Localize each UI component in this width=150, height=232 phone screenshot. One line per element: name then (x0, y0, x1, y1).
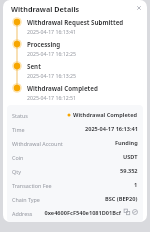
staticText: 2025-04-17 16:13:41 (27, 28, 77, 35)
staticText: BSC (BEP20) (105, 195, 138, 203)
staticText: Withdrawal Account (12, 140, 63, 147)
staticText: 59.352 (120, 167, 138, 175)
staticText: Transaction Fee (12, 182, 52, 189)
staticText: 2025-04-17 16:13:41 (85, 125, 138, 133)
staticText: 2025-04-17 16:12:25 (27, 50, 77, 57)
staticText: Time (12, 126, 25, 133)
staticText: 2025-04-17 16:13:25 (27, 72, 77, 79)
staticText: Status (12, 112, 28, 119)
staticText: Chain Type (12, 196, 40, 203)
button[interactable]: Close (135, 4, 143, 12)
staticText: Qty (12, 168, 21, 175)
staticText: USDT (123, 153, 138, 161)
button[interactable]: Open in explorer (132, 209, 138, 215)
staticText: Withdrawal Completed (73, 111, 138, 119)
staticText: Address (12, 210, 33, 216)
staticText: Funding (115, 139, 138, 147)
staticText: Sent (27, 62, 41, 70)
staticText: 1 (134, 181, 138, 189)
button[interactable]: Copy (124, 209, 130, 215)
staticText: Withdrawal Request Submitted (27, 18, 124, 26)
staticText: 0xe4600FcF540e1081D01Bcf D0D7ADF49bb3b27… (37, 209, 121, 216)
staticText: Coin (12, 154, 24, 161)
staticText: Withdrawal Details (11, 4, 80, 14)
staticText: Processing (27, 40, 61, 48)
staticText: 2025-04-17 16:12:51 (27, 94, 77, 101)
staticText: Withdrawal Completed (27, 84, 98, 92)
